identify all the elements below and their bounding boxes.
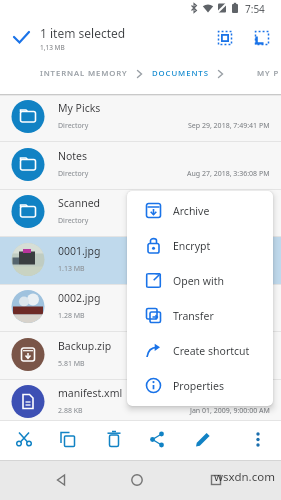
button[interactable]: Notes (0, 142, 281, 190)
button[interactable]: INTERNAL MEMORY (40, 68, 128, 79)
staticText: Jan 01, 2009, 9:00:00 AM (190, 406, 270, 416)
staticText: Oct 01, 2018, 8:00:00 AM (188, 311, 270, 321)
staticText: 1 item selected (40, 25, 126, 41)
staticText: Encrypt (173, 239, 211, 253)
staticText: 5.81 MB (58, 359, 85, 369)
button[interactable] (210, 22, 240, 52)
staticText: Aug 27, 2018, 3:36:08 PM (187, 169, 270, 179)
button[interactable]: MY P (257, 68, 280, 79)
staticText: 1.13 MB (58, 264, 85, 274)
button[interactable] (243, 423, 273, 457)
button[interactable]: My Picks (0, 94, 281, 142)
staticText: Open with (173, 274, 225, 288)
button[interactable]: Transfer (127, 298, 273, 333)
button[interactable] (53, 423, 83, 457)
staticText: Directory (58, 169, 89, 179)
button[interactable]: manifest.xml (0, 379, 281, 427)
staticText: Directory (58, 216, 89, 226)
button[interactable]: Archive (127, 193, 273, 228)
button[interactable] (99, 423, 129, 457)
button[interactable]: 0001.jpg (0, 237, 281, 285)
button[interactable]: 0002.jpg (0, 284, 281, 332)
staticText: 7:54 (245, 2, 265, 16)
button[interactable]: DOCUMENTS (152, 68, 209, 79)
staticText: wsxdn.com (214, 469, 275, 485)
staticText: Archive (173, 204, 210, 218)
staticText: Sep 29, 2018, 7:49:41 PM (188, 121, 270, 131)
staticText: Backup.zip (58, 339, 112, 353)
button[interactable] (188, 423, 218, 457)
staticText: Transfer (173, 309, 214, 323)
button[interactable]: Open with (127, 263, 273, 298)
button[interactable] (247, 22, 277, 52)
staticText: Properties (173, 379, 224, 393)
staticText: Create shortcut (173, 344, 250, 358)
staticText: INTERNAL MEMORY (40, 68, 128, 79)
staticText: DOCUMENTS (152, 68, 209, 79)
staticText: MY P (257, 68, 280, 79)
button[interactable]: Create shortcut (127, 333, 273, 368)
button[interactable]: Properties (127, 368, 273, 403)
staticText: 0001.jpg (58, 244, 101, 258)
button[interactable]: Scanned (0, 189, 281, 237)
button[interactable] (142, 423, 172, 457)
button[interactable]: Backup.zip (0, 332, 281, 380)
staticText: Directory (58, 121, 89, 131)
button[interactable] (117, 460, 157, 500)
staticText: Scanned (58, 196, 101, 210)
button[interactable] (9, 423, 39, 457)
button[interactable]: Encrypt (127, 228, 273, 263)
staticText: 1.28 MB (58, 311, 85, 321)
staticText: 2.88 KB (58, 406, 83, 416)
staticText: 0002.jpg (58, 291, 101, 305)
staticText: My Picks (58, 101, 101, 115)
button[interactable] (41, 460, 81, 500)
staticText: Notes (58, 149, 88, 163)
staticText: manifest.xml (58, 386, 123, 400)
button[interactable] (196, 460, 236, 500)
staticText: 1,13 MB (40, 43, 65, 52)
